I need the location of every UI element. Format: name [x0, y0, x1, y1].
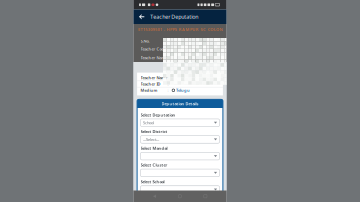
staticText: ET15309501 - HPPS RAMPUR SC COLON	[138, 27, 222, 32]
staticText: Select Deputation	[140, 112, 175, 117]
staticText: Deputation Details	[161, 101, 198, 106]
button[interactable]: Back	[150, 192, 159, 200]
staticText: Teacher Name	[140, 75, 167, 80]
button[interactable]: Home	[176, 192, 184, 200]
staticText: Select School	[140, 179, 164, 184]
staticText: Select Cluster	[140, 162, 167, 168]
staticText: Teacher Code	[140, 46, 166, 51]
button[interactable]: School	[140, 119, 219, 126]
staticText: School	[143, 120, 154, 125]
button[interactable]	[140, 169, 219, 177]
button[interactable]	[140, 186, 219, 193]
staticText: Telugu	[176, 88, 190, 93]
staticText: S.No.	[140, 38, 149, 44]
button[interactable]	[140, 152, 219, 160]
staticText: Select District	[140, 129, 167, 134]
staticText: ---Select---	[143, 137, 159, 142]
button[interactable]: Recent apps	[201, 192, 209, 200]
button[interactable]: ---Select---	[140, 136, 219, 143]
staticText: Teacher Deputation	[150, 13, 198, 20]
staticText: Select Mandal	[140, 146, 167, 151]
staticText: Teacher Name	[140, 55, 167, 60]
button[interactable]: Back	[136, 12, 147, 22]
staticText: Teacher ID	[140, 81, 160, 87]
staticText: Medium	[140, 88, 157, 93]
